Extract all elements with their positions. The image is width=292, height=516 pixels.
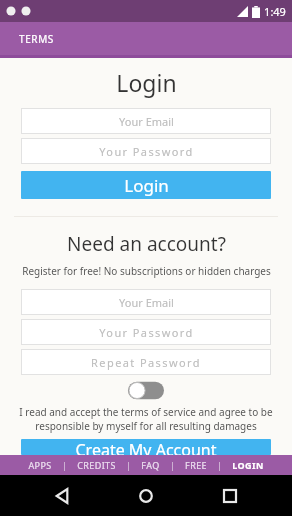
button[interactable]: Your Email — [21, 289, 271, 315]
staticText: Login — [124, 174, 169, 197]
staticText: Your Email — [119, 114, 174, 129]
staticText: Login — [116, 67, 177, 98]
staticText: FAQ — [141, 459, 160, 471]
button[interactable]: Accept terms toggle — [128, 381, 164, 400]
button[interactable]: FAQ — [139, 457, 162, 473]
button[interactable]: Recent apps — [208, 475, 252, 516]
staticText: Repeat Password — [91, 355, 201, 370]
staticText: 1:49 — [264, 4, 286, 19]
button[interactable]: TERMS — [0, 22, 292, 55]
button[interactable]: Back — [40, 475, 84, 516]
button[interactable]: Create My Account — [21, 439, 271, 455]
staticText: | — [170, 459, 175, 471]
button[interactable]: CREDITS — [75, 457, 118, 473]
staticText: Your Email — [119, 295, 174, 310]
staticText: TERMS — [19, 32, 54, 46]
staticText: I read and accept the terms of service a… — [19, 405, 273, 419]
button[interactable]: Your Password — [21, 319, 271, 345]
staticText: | — [62, 459, 67, 471]
staticText: LOGIN — [232, 459, 264, 471]
staticText: Your Password — [99, 325, 194, 340]
button[interactable]: Repeat Password — [21, 349, 271, 375]
button[interactable]: LOGIN — [230, 457, 266, 473]
button[interactable]: FREE — [183, 457, 209, 473]
staticText: CREDITS — [77, 459, 116, 471]
staticText: Your Password — [99, 144, 194, 159]
staticText: Need an account? — [67, 231, 226, 257]
button[interactable]: Your Password — [21, 138, 271, 164]
button[interactable]: Your Email — [21, 108, 271, 134]
staticText: FREE — [185, 459, 207, 471]
staticText: Create My Account — [75, 439, 217, 455]
staticText: responsible by myself for all resulting … — [35, 419, 257, 433]
staticText: | — [126, 459, 131, 471]
staticText: APPS — [28, 459, 52, 471]
button[interactable]: Login — [21, 171, 271, 199]
staticText: Register for free! No subscriptions or h… — [22, 264, 271, 278]
staticText: | — [217, 459, 222, 471]
button[interactable]: Home — [124, 475, 168, 516]
button[interactable]: APPS — [26, 457, 54, 473]
